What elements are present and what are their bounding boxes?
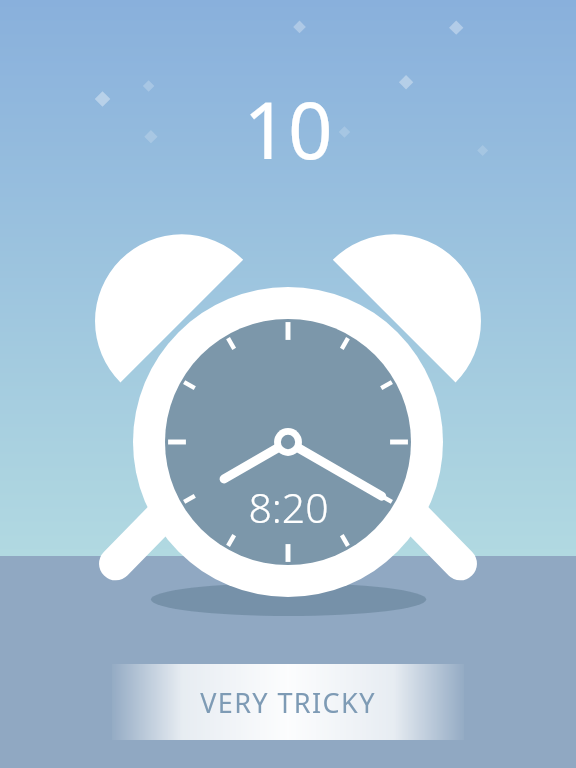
staticText: 10	[243, 76, 333, 182]
staticText: 8:20	[248, 479, 329, 535]
staticText: VERY TRICKY	[200, 684, 376, 721]
button[interactable]: Difficulty: Very Tricky	[112, 664, 464, 740]
